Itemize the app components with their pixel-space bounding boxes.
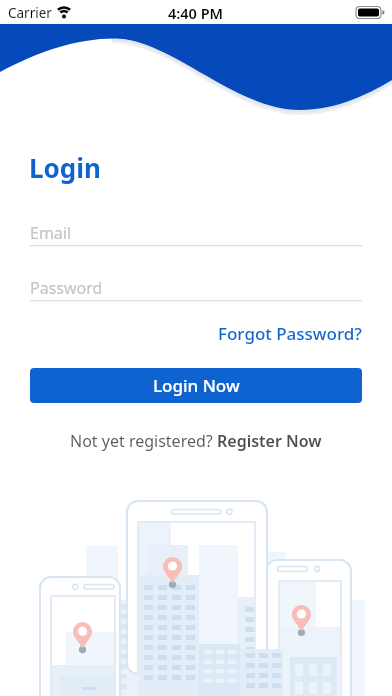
staticText: Login Now <box>153 374 240 397</box>
staticText: Register Now <box>217 430 322 452</box>
staticText: Email <box>30 222 72 244</box>
staticText: Not yet registered? <box>70 430 217 452</box>
staticText: Password <box>30 277 103 299</box>
staticText: 4:40 PM <box>168 3 224 23</box>
staticText: Carrier <box>8 4 52 22</box>
staticText: Login <box>29 150 101 185</box>
staticText: Forgot Password? <box>218 322 362 345</box>
